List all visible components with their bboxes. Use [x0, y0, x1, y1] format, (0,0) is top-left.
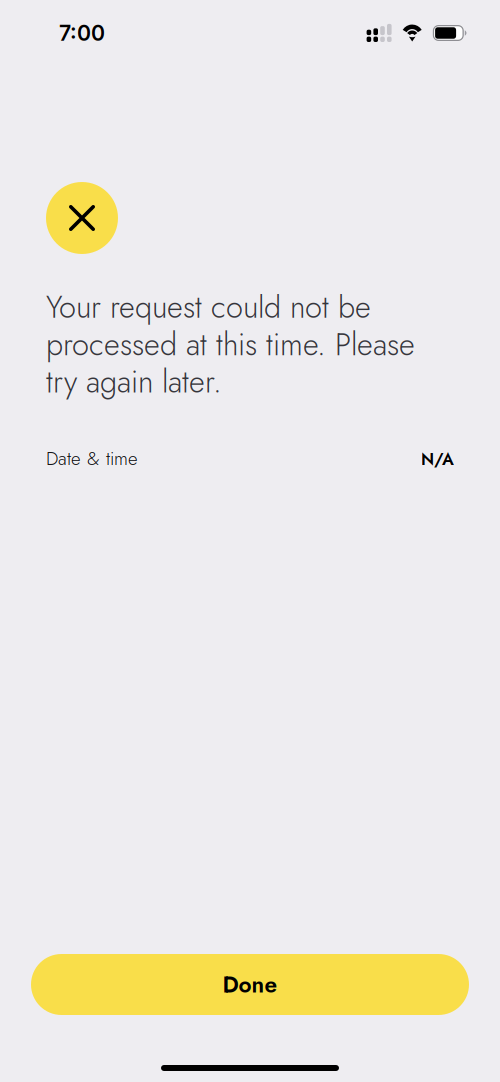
staticText: Your request could not be: [46, 285, 371, 329]
staticText: N/A: [421, 447, 454, 471]
staticText: processed at this time. Please: [46, 322, 415, 367]
staticText: 7:00: [59, 20, 105, 46]
button[interactable]: Done: [31, 954, 469, 1015]
staticText: Done: [222, 968, 277, 1001]
staticText: try again later.: [46, 360, 222, 404]
staticText: Date & time: [46, 445, 138, 472]
